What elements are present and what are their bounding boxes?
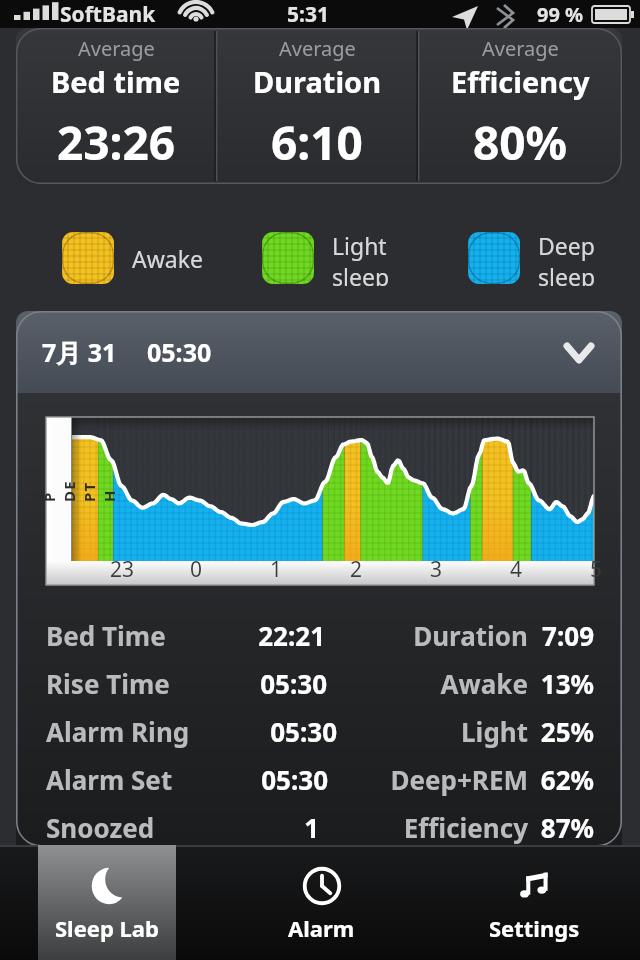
- staticText: Duration: [353, 618, 528, 653]
- button[interactable]: Alarm Set: [16, 755, 622, 803]
- button[interactable]: Alarm: [252, 845, 390, 960]
- staticText: Efficiency: [347, 810, 528, 845]
- staticText: sleep: [538, 261, 596, 286]
- staticText: 05:30: [147, 335, 212, 369]
- staticText: Bed Time: [46, 618, 166, 653]
- button[interactable]: Average: [216, 28, 418, 184]
- staticText: 99 %: [537, 1, 584, 28]
- staticText: 22:21: [166, 618, 325, 653]
- button[interactable]: Snoozed: [16, 803, 622, 845]
- staticText: 87%: [540, 810, 594, 845]
- staticText: Awake: [132, 243, 203, 274]
- staticText: Deep+REM: [356, 762, 528, 797]
- staticText: Duration: [253, 62, 382, 101]
- staticText: SLEEP DEPTH: [16, 476, 119, 502]
- staticText: 5:31: [287, 0, 329, 28]
- staticText: 2: [350, 555, 363, 584]
- staticText: Average: [78, 35, 155, 62]
- staticText: Snoozed: [46, 810, 155, 845]
- staticText: Settings: [489, 913, 580, 943]
- staticText: Light: [332, 230, 387, 261]
- button[interactable]: Sleep Lab: [38, 845, 176, 960]
- button[interactable]: Deep: [468, 230, 596, 286]
- button[interactable]: Awake: [62, 230, 203, 286]
- button[interactable]: 7月 31: [16, 311, 622, 393]
- staticText: 05:30: [173, 762, 328, 797]
- staticText: 23: [110, 555, 135, 584]
- staticText: 05:30: [190, 714, 337, 749]
- button[interactable]: Bed Time: [16, 611, 622, 659]
- staticText: Bed time: [51, 62, 181, 101]
- staticText: Alarm Ring: [46, 714, 190, 749]
- staticText: Rise Time: [46, 666, 170, 701]
- staticText: 0: [190, 555, 203, 584]
- staticText: Deep: [538, 230, 595, 261]
- staticText: 23:26: [57, 111, 176, 174]
- staticText: 62%: [540, 762, 594, 797]
- staticText: 25%: [540, 714, 594, 749]
- button[interactable]: Rise Time: [16, 659, 622, 707]
- staticText: Alarm: [288, 913, 355, 943]
- staticText: 5: [590, 555, 603, 584]
- button[interactable]: Alarm Ring: [16, 707, 622, 755]
- staticText: Awake: [355, 666, 528, 701]
- staticText: Light: [365, 714, 528, 749]
- staticText: 3: [430, 555, 443, 584]
- staticText: 7月 31: [42, 335, 117, 369]
- button[interactable]: Average: [16, 28, 216, 184]
- staticText: 4: [510, 555, 523, 584]
- staticText: 7:09: [540, 618, 594, 653]
- other: Expand: [562, 335, 596, 369]
- staticText: Average: [482, 35, 559, 62]
- button[interactable]: Average: [418, 28, 622, 184]
- staticText: Average: [279, 35, 356, 62]
- staticText: 05:30: [170, 666, 327, 701]
- staticText: 1: [270, 555, 283, 584]
- staticText: Alarm Set: [46, 762, 173, 797]
- staticText: Sleep Lab: [55, 913, 159, 943]
- staticText: SoftBank: [60, 0, 156, 28]
- button[interactable]: Light: [262, 230, 390, 286]
- staticText: Efficiency: [451, 62, 590, 101]
- staticText: 1: [155, 810, 319, 845]
- staticText: 80%: [473, 111, 568, 174]
- staticText: 6:10: [271, 111, 363, 174]
- staticText: sleep: [332, 261, 390, 286]
- button[interactable]: Settings: [465, 845, 603, 960]
- staticText: 13%: [540, 666, 594, 701]
